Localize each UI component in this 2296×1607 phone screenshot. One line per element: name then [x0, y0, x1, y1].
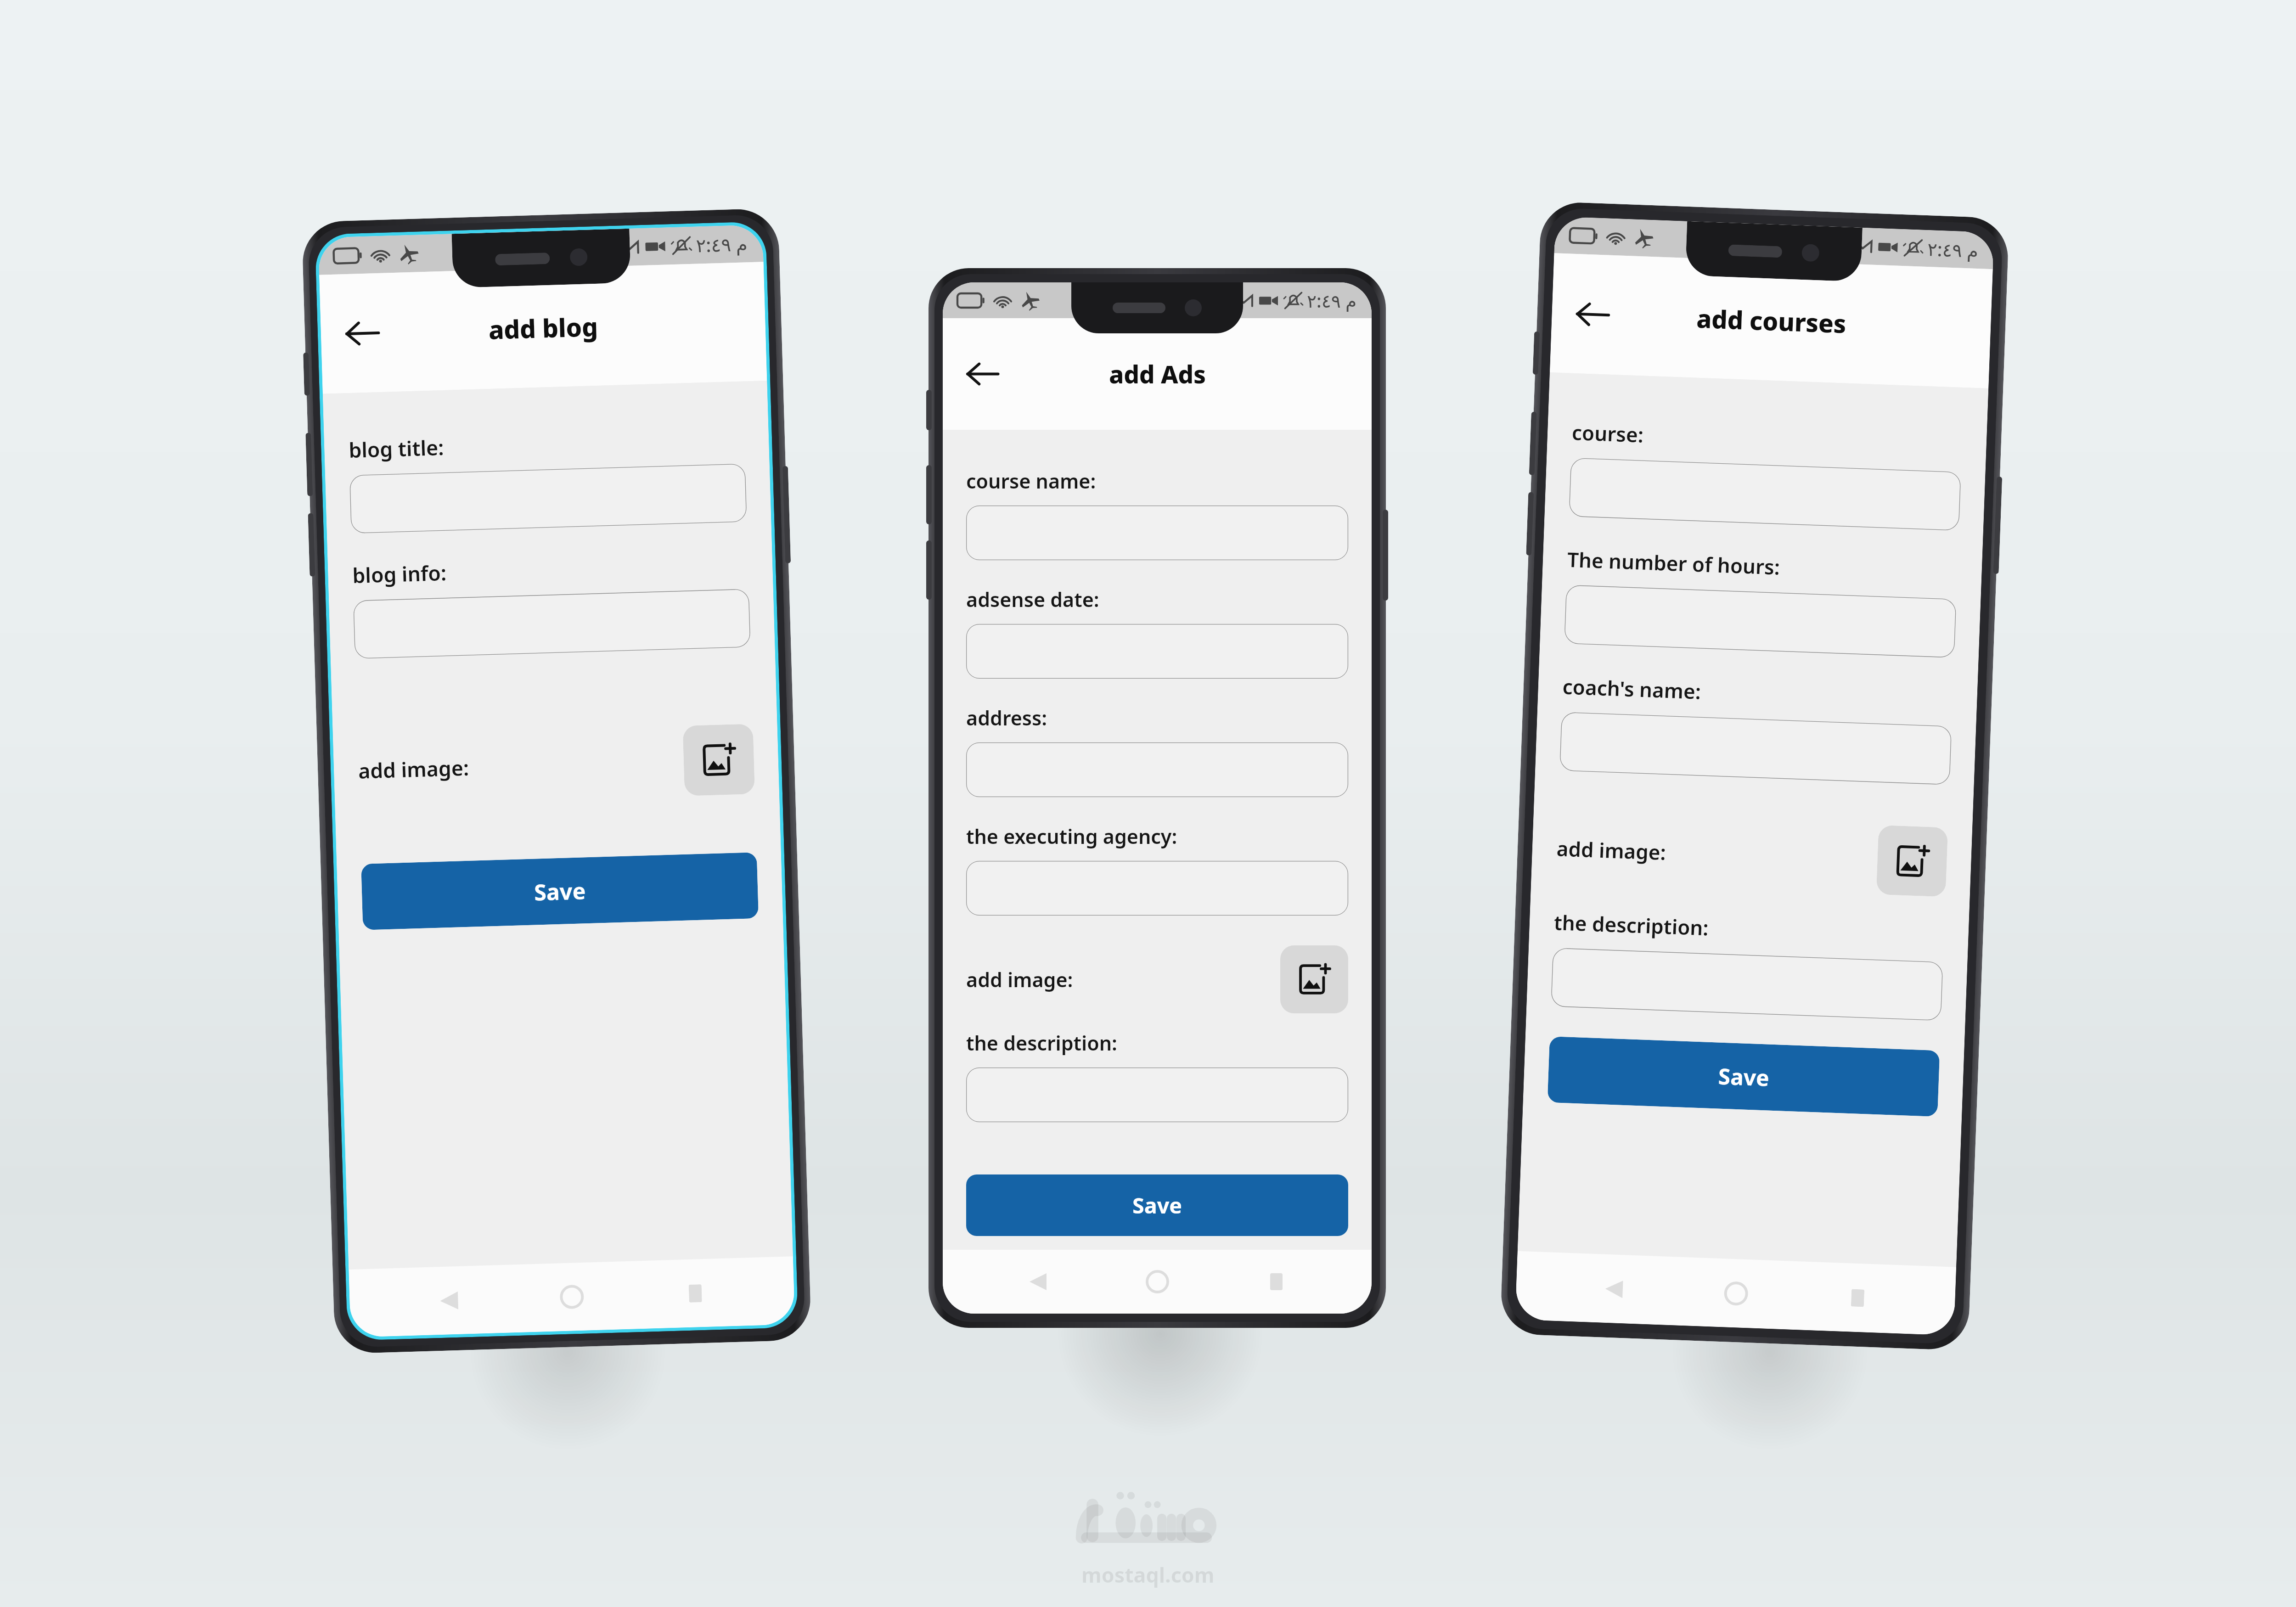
button[interactable]: Home — [547, 1272, 597, 1322]
button[interactable]: Back — [333, 304, 392, 363]
staticText: add courses — [1696, 301, 1847, 341]
button[interactable]: Home — [1711, 1268, 1761, 1318]
staticText: coach's name: — [1562, 672, 1702, 705]
staticText: The number of hours: — [1567, 545, 1781, 581]
button[interactable]: Back — [1589, 1264, 1639, 1314]
staticText: add blog — [488, 309, 598, 347]
staticText: م ٢:٤٩ — [696, 231, 748, 258]
staticText: add image: — [966, 966, 1073, 993]
staticText: Save — [534, 875, 586, 907]
button[interactable]: Home — [1134, 1258, 1181, 1305]
staticText: course: — [1571, 418, 1644, 448]
button[interactable]: Back — [424, 1275, 474, 1326]
staticText: add image: — [358, 753, 469, 785]
button[interactable]: Recents — [1832, 1273, 1882, 1323]
staticText: م ٢:٤٩ — [1307, 288, 1357, 313]
staticText: the description: — [966, 1029, 1117, 1056]
button[interactable]: Recents — [1253, 1258, 1300, 1305]
button[interactable]: Save — [966, 1174, 1348, 1236]
button[interactable]: Add image — [683, 724, 755, 796]
button[interactable]: Back — [1563, 285, 1622, 344]
button[interactable]: Back — [1014, 1258, 1062, 1305]
staticText: blog title: — [348, 433, 445, 464]
staticText: Save — [1132, 1191, 1182, 1220]
button[interactable]: Add image — [1280, 945, 1348, 1013]
staticText: course name: — [966, 467, 1096, 494]
button[interactable]: add image: — [357, 724, 755, 806]
staticText: add Ads — [1109, 357, 1206, 391]
button[interactable]: Recents — [670, 1268, 720, 1318]
button[interactable]: add image: — [1555, 813, 1948, 897]
button[interactable]: Save — [361, 852, 759, 930]
staticText: address: — [966, 704, 1047, 731]
staticText: adsense date: — [966, 586, 1099, 613]
staticText: add image: — [1556, 834, 1666, 866]
button[interactable]: Save — [1547, 1036, 1940, 1117]
staticText: blog info: — [352, 558, 447, 589]
button[interactable]: Back — [955, 346, 1010, 402]
staticText: the description: — [1553, 908, 1709, 941]
staticText: Save — [1718, 1061, 1770, 1093]
button[interactable]: add image: — [966, 945, 1348, 1013]
staticText: م ٢:٤٩ — [1927, 236, 1979, 263]
staticText: the executing agency: — [966, 823, 1177, 850]
button[interactable]: Add image — [1876, 825, 1948, 897]
staticText: mostaql.com — [1081, 1561, 1215, 1589]
